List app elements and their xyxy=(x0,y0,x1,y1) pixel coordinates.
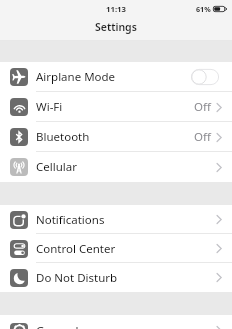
button[interactable]: Airplane Mode toggle xyxy=(191,69,219,85)
button[interactable]: Cellular xyxy=(0,152,232,182)
staticText: Wi-Fi xyxy=(36,99,63,115)
staticText: Off xyxy=(194,129,211,145)
staticText: Cellular xyxy=(36,159,77,175)
button[interactable]: Notifications xyxy=(0,205,232,234)
staticText: Airplane Mode xyxy=(36,69,116,85)
button[interactable]: General xyxy=(0,315,232,329)
staticText: 11:13 xyxy=(106,4,127,15)
button[interactable]: Airplane Mode xyxy=(0,62,232,92)
button[interactable]: Wi-Fi xyxy=(0,92,232,122)
staticText: Notifications xyxy=(36,212,105,228)
staticText: General xyxy=(36,323,79,329)
staticText: Off xyxy=(194,99,211,115)
staticText: 61% xyxy=(196,4,211,14)
staticText: Control Center xyxy=(36,241,116,257)
button[interactable]: Control Center xyxy=(0,234,232,263)
staticText: Settings xyxy=(95,20,137,34)
button[interactable]: Do Not Disturb xyxy=(0,263,232,292)
staticText: Do Not Disturb xyxy=(36,270,118,286)
button[interactable]: Bluetooth xyxy=(0,122,232,152)
staticText: Bluetooth xyxy=(36,129,90,145)
